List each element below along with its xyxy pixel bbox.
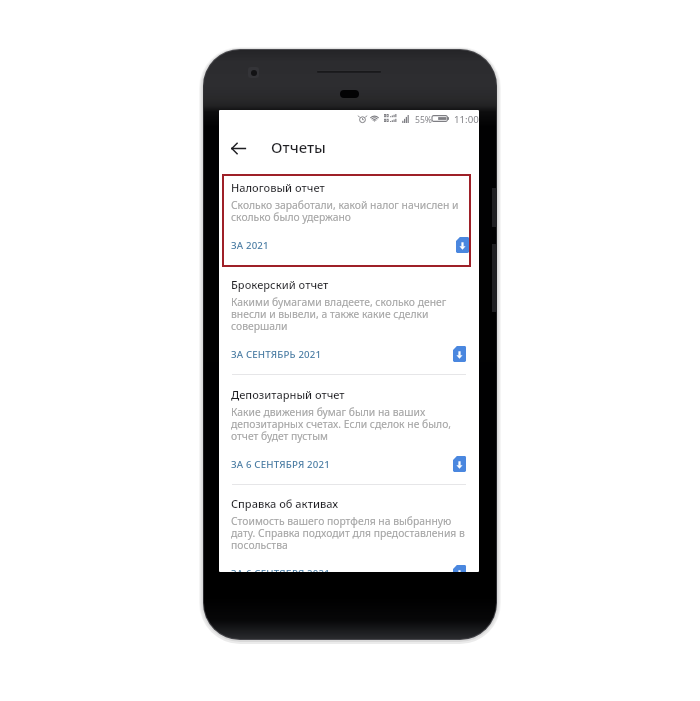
staticText: Справка об активах bbox=[231, 496, 339, 511]
staticText: 11:00 bbox=[454, 113, 479, 126]
button[interactable]: Брокерский отчет bbox=[219, 273, 479, 373]
button[interactable]: Download report bbox=[453, 565, 466, 572]
button[interactable]: Back bbox=[222, 132, 254, 164]
staticText: ЗА 2021 bbox=[231, 239, 269, 252]
staticText: Налоговый отчет bbox=[231, 180, 325, 195]
button[interactable]: Download report bbox=[453, 456, 466, 472]
button[interactable]: Download report bbox=[453, 346, 466, 362]
staticText: Депозитарный отчет bbox=[231, 387, 345, 402]
staticText: Отчеты bbox=[271, 137, 326, 157]
staticText: ЗА 6 СЕНТЯБРЯ 2021 bbox=[231, 567, 330, 572]
button[interactable]: Налоговый отчет bbox=[222, 174, 471, 267]
staticText: Брокерский отчет bbox=[231, 277, 329, 292]
staticText: ЗА СЕНТЯБРЬ 2021 bbox=[231, 348, 322, 361]
staticText: Стоимость вашего портфеля на выбранную д… bbox=[231, 514, 465, 552]
button[interactable]: Справка об активах bbox=[219, 492, 479, 572]
staticText: Сколько заработали, какой налог начислен… bbox=[231, 198, 459, 224]
staticText: Какими бумагами владеете, сколько денег … bbox=[231, 295, 447, 333]
staticText: Какие движения бумаг были на ваших депоз… bbox=[231, 405, 452, 443]
button[interactable]: Download report bbox=[456, 237, 469, 253]
staticText: 55% bbox=[415, 114, 432, 126]
staticText: ЗА 6 СЕНТЯБРЯ 2021 bbox=[231, 458, 330, 471]
button[interactable]: Депозитарный отчет bbox=[219, 383, 479, 483]
